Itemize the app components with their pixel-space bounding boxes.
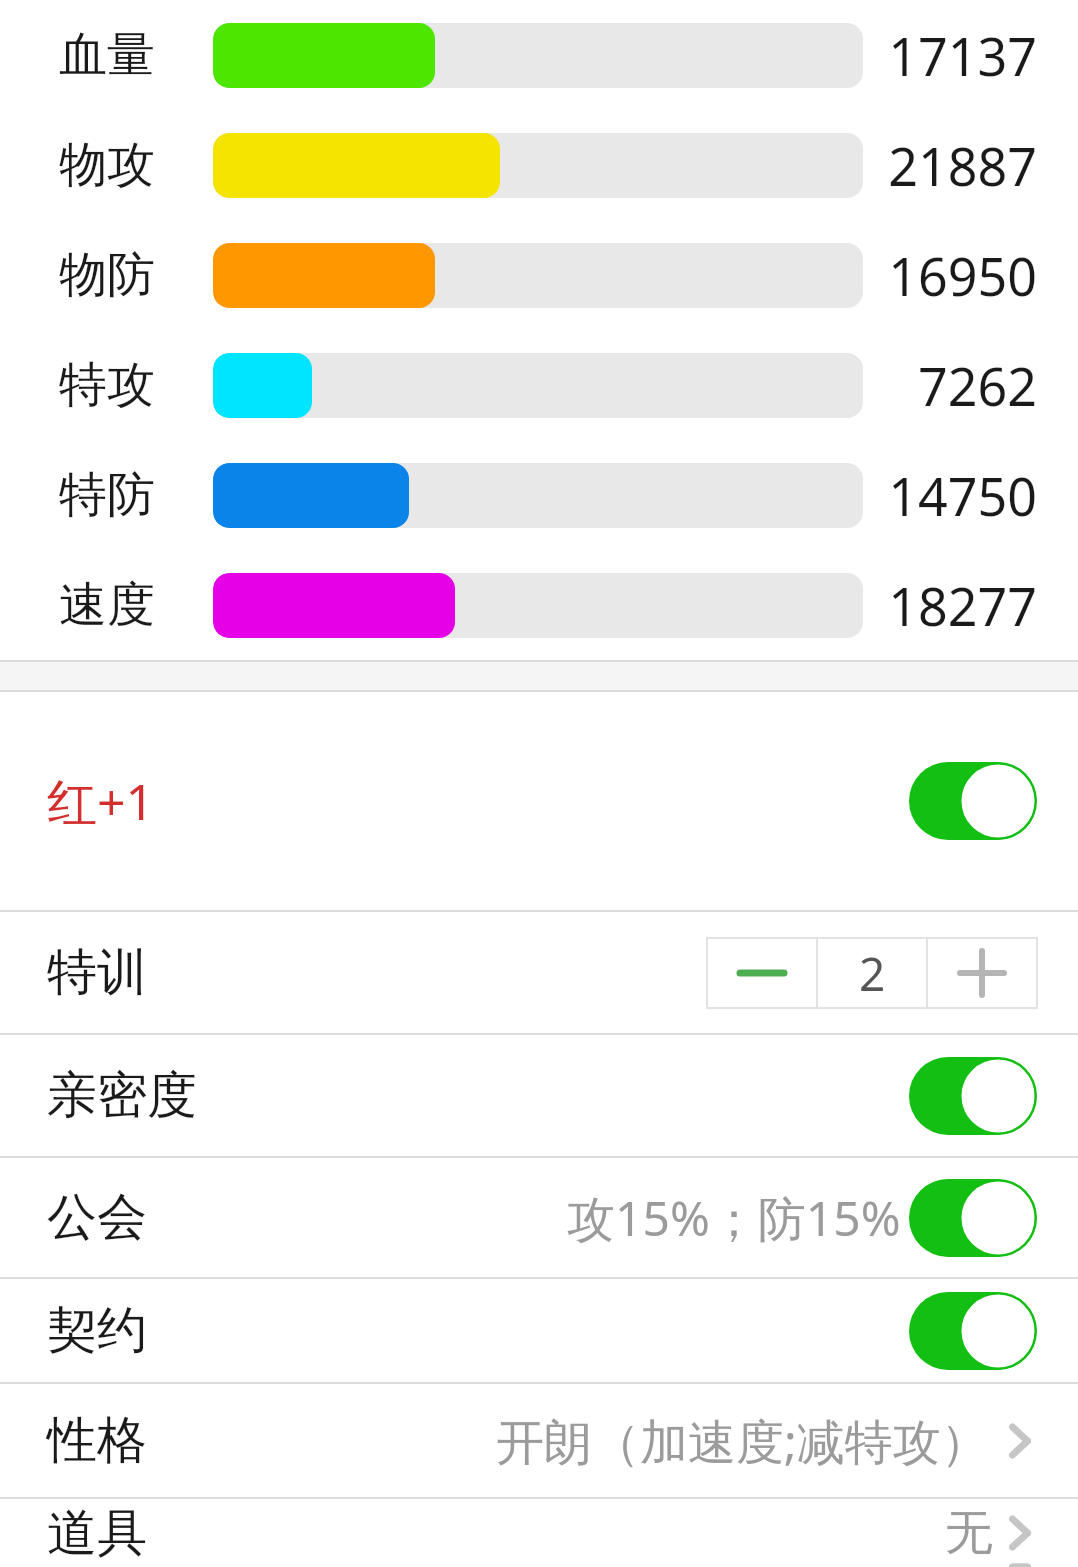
button[interactable]: 速度: [0, 550, 1078, 660]
staticText: 特训: [47, 941, 147, 1004]
staticText: 红+1: [47, 767, 155, 835]
staticText: 速度: [59, 575, 155, 635]
staticText: 开朗（加速度;减特攻）: [496, 1408, 989, 1474]
staticText: 18277: [888, 570, 1037, 641]
staticText: 21887: [888, 130, 1037, 201]
button[interactable]: Toggle: [909, 1179, 1037, 1257]
button[interactable]: 特训: [0, 912, 1078, 1033]
staticText: 14750: [888, 460, 1037, 531]
button[interactable]: 道具: [0, 1499, 1078, 1567]
staticText: 公会: [47, 1186, 147, 1249]
staticText: 7262: [918, 350, 1037, 421]
staticText: 性格: [47, 1409, 147, 1472]
button[interactable]: Decrease: [707, 938, 817, 1008]
staticText: 16950: [888, 240, 1037, 311]
staticText: 道具: [47, 1502, 147, 1565]
staticText: 无: [945, 1503, 993, 1563]
button[interactable]: 2: [817, 938, 927, 1008]
staticText: 攻15%；防15%: [567, 1185, 901, 1251]
staticText: 2: [859, 942, 886, 1005]
staticText: 物防: [59, 245, 155, 305]
staticText: 特攻: [59, 355, 155, 415]
staticText: 特防: [59, 465, 155, 525]
button[interactable]: 公会: [0, 1158, 1078, 1277]
button[interactable]: 特攻: [0, 330, 1078, 440]
button[interactable]: 契约: [0, 1279, 1078, 1382]
button[interactable]: Toggle: [909, 1292, 1037, 1370]
staticText: 17137: [888, 20, 1037, 91]
button[interactable]: Open: [1003, 1416, 1037, 1466]
button[interactable]: Toggle: [909, 762, 1037, 840]
button[interactable]: 特防: [0, 440, 1078, 550]
staticText: 血量: [59, 25, 155, 85]
button[interactable]: Increase: [927, 938, 1037, 1008]
staticText: 亲密度: [47, 1064, 197, 1127]
button[interactable]: 红+1: [0, 692, 1078, 910]
button[interactable]: 物防: [0, 220, 1078, 330]
button[interactable]: 亲密度: [0, 1035, 1078, 1156]
button[interactable]: Toggle: [909, 1057, 1037, 1135]
button[interactable]: Open: [1003, 1508, 1037, 1558]
button[interactable]: 血量: [0, 0, 1078, 110]
staticText: 物攻: [59, 135, 155, 195]
button[interactable]: 性格: [0, 1384, 1078, 1497]
staticText: 契约: [47, 1299, 147, 1362]
button[interactable]: 物攻: [0, 110, 1078, 220]
